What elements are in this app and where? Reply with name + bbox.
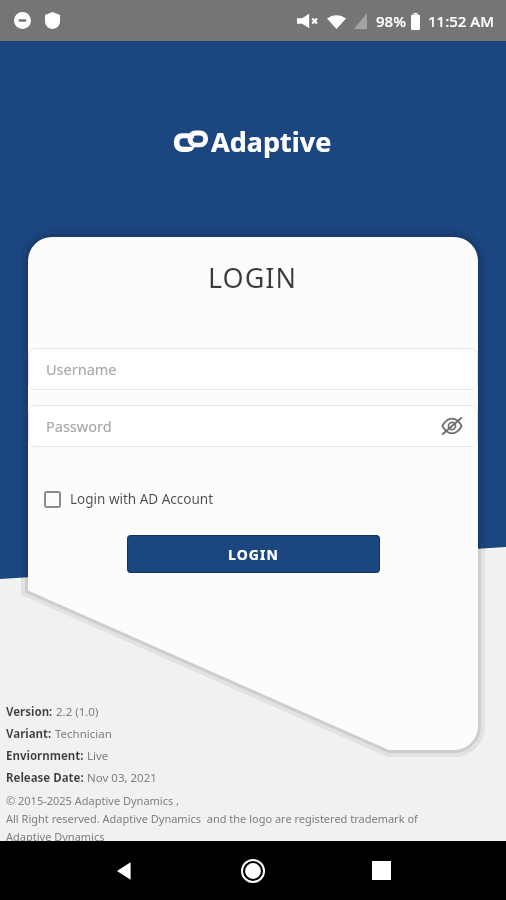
staticText: Live bbox=[87, 748, 109, 764]
staticText: 98% bbox=[376, 11, 406, 31]
staticText: Login with AD Account bbox=[70, 490, 214, 508]
button[interactable]: Recent apps bbox=[317, 841, 446, 900]
button[interactable]: Login with AD Account bbox=[40, 486, 218, 512]
staticText: 2.2 (1.0) bbox=[56, 704, 99, 720]
button[interactable]: Back bbox=[60, 841, 188, 900]
staticText: Username bbox=[46, 359, 117, 379]
staticText: 11:52 AM bbox=[428, 11, 494, 31]
staticText: LOGIN bbox=[208, 259, 298, 296]
staticText: Release Date: bbox=[6, 770, 87, 786]
staticText: All Right reserved. Adaptive Dynamics an… bbox=[6, 811, 418, 826]
staticText: Adaptive bbox=[211, 123, 332, 160]
staticText: Version: bbox=[6, 704, 56, 720]
staticText: Password bbox=[46, 416, 112, 436]
button[interactable]: Show password bbox=[438, 412, 466, 440]
staticText: LOGIN bbox=[228, 545, 280, 564]
button[interactable]: Home bbox=[188, 841, 317, 900]
staticText: Adaptive Dynamics bbox=[6, 829, 105, 844]
staticText: Nov 03, 2021 bbox=[87, 770, 157, 786]
staticText: Enviornment: bbox=[6, 748, 87, 764]
staticText: © 2015-2025 Adaptive Dynamics , bbox=[6, 793, 180, 808]
staticText: Variant: bbox=[6, 726, 55, 742]
button[interactable]: Username bbox=[28, 348, 478, 390]
button[interactable]: Password bbox=[28, 405, 478, 447]
staticText: Technician bbox=[55, 726, 112, 742]
button[interactable]: LOGIN bbox=[127, 535, 380, 573]
